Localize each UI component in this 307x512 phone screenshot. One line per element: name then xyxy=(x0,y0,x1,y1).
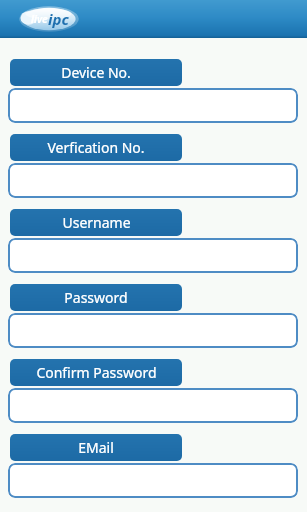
button[interactable]: Device No. xyxy=(10,59,182,86)
button[interactable]: Password xyxy=(10,284,182,311)
button[interactable]: Username xyxy=(10,209,182,236)
button[interactable] xyxy=(8,388,298,423)
staticText: EMail xyxy=(78,438,114,457)
staticText: ipc xyxy=(48,9,69,29)
staticText: Device No. xyxy=(61,63,131,82)
staticText: Password xyxy=(64,288,128,307)
staticText: Username xyxy=(62,213,131,232)
button[interactable] xyxy=(8,88,298,123)
staticText: Verfication No. xyxy=(47,138,145,157)
button[interactable] xyxy=(8,238,298,273)
button[interactable] xyxy=(8,463,298,498)
button[interactable]: Verfication No. xyxy=(10,134,182,161)
button[interactable] xyxy=(8,163,298,198)
button[interactable]: EMail xyxy=(10,434,182,461)
button[interactable]: Confirm Password xyxy=(10,359,182,386)
staticText: live xyxy=(31,12,48,26)
button[interactable] xyxy=(8,313,298,348)
button[interactable]: liveipc logo xyxy=(18,3,80,35)
staticText: Confirm Password xyxy=(36,363,157,382)
